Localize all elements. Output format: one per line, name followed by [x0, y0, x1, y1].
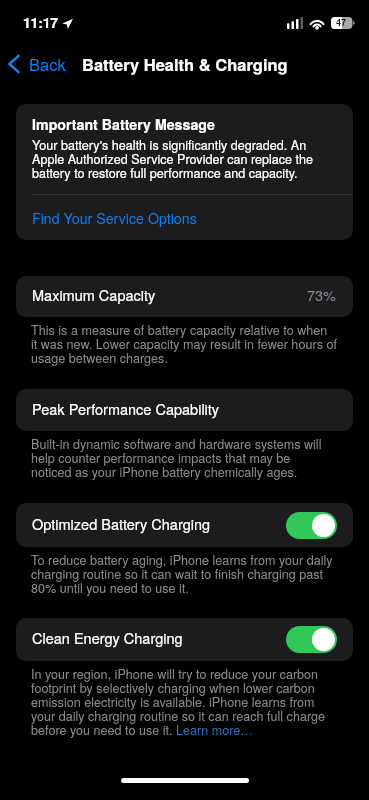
button[interactable]: In your region, iPhone will try to reduc… — [31, 668, 326, 738]
staticText: Find Your Service Options — [32, 208, 197, 228]
staticText: Battery Health & Charging — [82, 52, 288, 76]
staticText: Built-in dynamic software and hardware s… — [31, 438, 322, 480]
staticText: Clean Energy Charging — [32, 627, 183, 648]
staticText: 73% — [307, 284, 337, 305]
button[interactable]: Optimized Battery Charging — [16, 503, 353, 547]
staticText: To reduce battery aging, iPhone learns f… — [31, 554, 333, 596]
staticText: 11:17 — [23, 12, 58, 32]
button[interactable]: Clean Energy Charging — [16, 618, 353, 661]
staticText: Your battery's health is significantly d… — [32, 139, 314, 181]
button[interactable]: Toggle — [286, 626, 337, 653]
button[interactable]: Back — [0, 46, 74, 82]
staticText: Important Battery Message — [32, 114, 215, 134]
staticText: Back — [29, 52, 66, 76]
staticText: 47 — [336, 16, 347, 29]
button[interactable]: Maximum Capacity — [16, 276, 353, 317]
staticText: Optimized Battery Charging — [32, 513, 211, 534]
staticText: Peak Performance Capability — [32, 398, 220, 419]
button[interactable]: Find Your Service Options — [16, 195, 353, 240]
button[interactable]: Toggle — [286, 512, 337, 539]
staticText: Maximum Capacity — [32, 284, 156, 305]
staticText: This is a measure of battery capacity re… — [31, 324, 337, 366]
button[interactable]: Peak Performance Capability — [16, 389, 353, 431]
